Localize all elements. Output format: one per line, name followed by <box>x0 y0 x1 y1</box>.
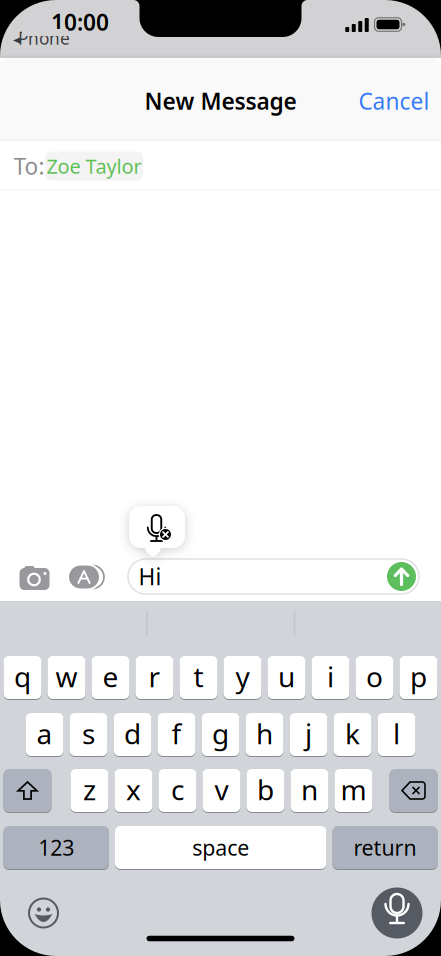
button[interactable]: f <box>157 712 195 756</box>
button[interactable]: i <box>311 655 349 699</box>
staticText: h <box>256 715 273 752</box>
button[interactable]: Zoe Taylor <box>45 151 143 180</box>
button[interactable]: e <box>91 655 129 699</box>
staticText: z <box>83 771 96 808</box>
button[interactable]: h <box>245 712 283 756</box>
staticText: Zoe Taylor <box>46 153 141 179</box>
button[interactable]: z <box>70 768 108 812</box>
button[interactable]: j <box>289 712 327 756</box>
button[interactable]: b <box>246 768 284 812</box>
button[interactable]: Apps <box>69 564 109 589</box>
staticText: space <box>192 833 249 862</box>
staticText: y <box>235 658 249 695</box>
staticText: l <box>393 715 400 752</box>
button[interactable]: Cancel <box>358 86 429 116</box>
button[interactable]: return <box>332 825 437 869</box>
staticText: f <box>171 715 181 752</box>
button[interactable]: d <box>113 712 151 756</box>
staticText: c <box>171 771 184 808</box>
button[interactable]: Shift <box>3 768 51 812</box>
staticText: r <box>148 658 160 695</box>
staticText: x <box>126 771 141 808</box>
staticText: w <box>55 658 77 695</box>
staticText: i <box>327 658 334 695</box>
button[interactable]: Camera <box>19 564 49 590</box>
button[interactable]: Emoji <box>27 897 59 929</box>
staticText: v <box>214 771 228 808</box>
staticText: s <box>82 715 95 752</box>
button[interactable]: w <box>47 655 85 699</box>
button[interactable]: n <box>290 768 328 812</box>
button[interactable]: r <box>135 655 173 699</box>
button[interactable]: t <box>179 655 217 699</box>
staticText: o <box>366 658 383 695</box>
button[interactable]: m <box>334 768 372 812</box>
staticText: b <box>257 771 274 808</box>
staticText: k <box>345 715 360 752</box>
button[interactable]: c <box>158 768 196 812</box>
button[interactable]: o <box>355 655 393 699</box>
button[interactable]: g <box>201 712 239 756</box>
staticText: n <box>301 771 318 808</box>
staticText: j <box>305 715 312 752</box>
staticText: New Message <box>144 86 296 116</box>
staticText: t <box>193 658 203 695</box>
button[interactable]: v <box>202 768 240 812</box>
button[interactable]: Delete <box>389 768 437 812</box>
button[interactable]: y <box>223 655 261 699</box>
button[interactable]: s <box>69 712 107 756</box>
button[interactable]: k <box>333 712 371 756</box>
button[interactable]: 123 <box>3 825 109 869</box>
staticText: return <box>353 833 416 862</box>
button[interactable]: Send <box>387 562 416 591</box>
button[interactable]: u <box>267 655 305 699</box>
staticText: u <box>278 658 295 695</box>
button[interactable]: space <box>115 825 326 869</box>
button[interactable]: x <box>114 768 152 812</box>
button[interactable]: Dictation <box>371 887 422 938</box>
staticText: e <box>102 658 118 695</box>
staticText: m <box>340 771 366 808</box>
staticText: g <box>212 715 229 752</box>
button[interactable]: p <box>399 655 437 699</box>
staticText: Hi <box>138 561 161 591</box>
button[interactable]: q <box>3 655 41 699</box>
button[interactable]: l <box>377 712 415 756</box>
staticText: a <box>36 715 52 752</box>
staticText: 123 <box>38 833 74 862</box>
staticText: p <box>410 658 427 695</box>
staticText: 10:00 <box>51 7 109 37</box>
staticText: Cancel <box>358 86 429 116</box>
staticText: Phone <box>18 26 70 49</box>
button[interactable]: a <box>25 712 63 756</box>
staticText: q <box>14 658 31 695</box>
staticText: To: <box>13 151 44 181</box>
button[interactable]: Dictation unavailable <box>143 514 173 544</box>
staticText: d <box>124 715 141 752</box>
button[interactable]: Message field <box>128 559 419 594</box>
